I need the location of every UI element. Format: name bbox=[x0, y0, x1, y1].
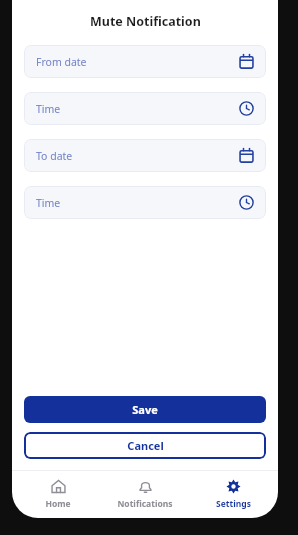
other: Pick time bbox=[239, 101, 254, 116]
button[interactable]: Cancel bbox=[24, 432, 266, 459]
staticText: Time bbox=[36, 196, 61, 210]
other: Pick date bbox=[239, 148, 254, 163]
button[interactable]: Save bbox=[24, 396, 266, 423]
staticText: Notifications bbox=[117, 498, 173, 510]
staticText: Save bbox=[132, 402, 158, 417]
button[interactable]: Notifications bbox=[103, 475, 187, 514]
staticText: To date bbox=[36, 149, 73, 163]
other: Pick time bbox=[239, 195, 254, 210]
staticText: Time bbox=[36, 102, 61, 116]
button[interactable]: Home bbox=[16, 475, 100, 514]
button[interactable]: Time bbox=[24, 92, 266, 125]
staticText: From date bbox=[36, 55, 87, 69]
other: Pick date bbox=[239, 54, 254, 69]
button[interactable]: Time bbox=[24, 186, 266, 219]
staticText: Cancel bbox=[127, 438, 164, 453]
staticText: Mute Notification bbox=[90, 13, 201, 30]
staticText: Home bbox=[45, 498, 71, 510]
button[interactable]: Settings bbox=[191, 475, 275, 514]
button[interactable]: To date bbox=[24, 139, 266, 172]
staticText: Settings bbox=[216, 498, 251, 510]
button[interactable]: From date bbox=[24, 45, 266, 78]
